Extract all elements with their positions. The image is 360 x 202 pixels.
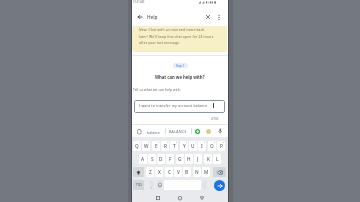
staticText: U: [191, 143, 195, 149]
staticText: Tell us what we can help with:: [133, 88, 181, 92]
button[interactable]: .: [202, 180, 207, 190]
button[interactable]: S: [148, 154, 156, 164]
staticText: W: [144, 143, 149, 149]
staticText: 10:01 AM: [133, 0, 145, 4]
staticText: 2/700: [211, 117, 219, 121]
button[interactable]: L: [213, 154, 221, 164]
button[interactable]: Z: [146, 167, 154, 177]
staticText: P: [220, 143, 223, 149]
staticText: D: [159, 156, 163, 162]
staticText: 3: [158, 141, 160, 144]
button[interactable]: H: [185, 154, 193, 164]
staticText: Help: [147, 14, 158, 20]
staticText: ?123: [136, 183, 142, 187]
button[interactable]: [205, 14, 211, 20]
button[interactable]: [177, 195, 183, 201]
button[interactable]: balance: [144, 127, 163, 136]
staticText: L: [216, 156, 219, 162]
button[interactable]: C: [165, 167, 173, 177]
staticText: 1: [139, 141, 141, 144]
staticText: 2: [148, 141, 150, 144]
staticText: I want to transfer my account balance: [139, 103, 208, 108]
button[interactable]: T: [170, 141, 178, 151]
staticText: Q: [135, 143, 139, 149]
button[interactable]: R: [161, 141, 169, 151]
staticText: What can we help with?: [155, 74, 205, 80]
staticText: R: [164, 143, 167, 149]
button[interactable]: Q: [133, 141, 141, 151]
staticText: H: [187, 156, 191, 162]
staticText: C: [168, 169, 171, 175]
button[interactable]: [206, 129, 211, 134]
staticText: Y: [183, 143, 186, 149]
staticText: ,: [151, 183, 153, 188]
staticText: O: [210, 143, 214, 149]
button[interactable]: U: [189, 141, 197, 151]
button[interactable]: E: [152, 141, 160, 151]
staticText: K: [207, 156, 210, 162]
button[interactable]: O: [208, 141, 216, 151]
staticText: S: [151, 156, 154, 162]
button[interactable]: V: [174, 167, 182, 177]
staticText: 0: [223, 141, 225, 144]
button[interactable]: [134, 100, 225, 113]
staticText: E: [155, 143, 158, 149]
staticText: V: [177, 169, 180, 175]
button[interactable]: Step 1: [173, 63, 188, 68]
button[interactable]: I: [198, 141, 206, 151]
button[interactable]: X: [155, 167, 163, 177]
button[interactable]: [155, 195, 161, 201]
button[interactable]: [213, 167, 226, 177]
button[interactable]: ,: [149, 180, 154, 190]
staticText: 9: [214, 141, 216, 144]
staticText: X: [158, 169, 161, 175]
staticText: .: [204, 183, 206, 188]
staticText: J: [197, 156, 199, 162]
button[interactable]: B: [183, 167, 191, 177]
staticText: A: [141, 156, 145, 162]
staticText: Z: [149, 169, 152, 175]
button[interactable]: P: [217, 141, 225, 151]
staticText: N: [195, 169, 199, 175]
button[interactable]: K: [204, 154, 212, 164]
button[interactable]: Y: [180, 141, 188, 151]
staticText: B: [185, 169, 189, 175]
staticText: 4: [167, 141, 169, 144]
staticText: G: [178, 156, 182, 162]
staticText: BALANCE: [169, 129, 187, 134]
staticText: Step 1: [176, 64, 185, 68]
staticText: T: [173, 143, 176, 149]
button[interactable]: D: [157, 154, 165, 164]
button[interactable]: [217, 14, 221, 21]
staticText: 5: [176, 141, 178, 144]
button[interactable]: [157, 180, 162, 190]
button[interactable]: BALANCE: [166, 127, 189, 136]
button[interactable]: ?123: [133, 180, 144, 190]
staticText: balance: [147, 130, 161, 134]
button[interactable]: A: [139, 154, 147, 164]
button[interactable]: N: [193, 167, 201, 177]
button[interactable]: [199, 195, 205, 201]
button[interactable]: [195, 129, 200, 134]
button[interactable]: [137, 129, 142, 134]
staticText: I: [201, 143, 203, 149]
staticText: 6: [186, 141, 188, 144]
staticText: after your last message.: [139, 40, 181, 45]
button[interactable]: [218, 128, 222, 135]
staticText: later! We'll keep this chat open for 24 …: [139, 34, 214, 39]
button[interactable]: W: [142, 141, 150, 151]
button[interactable]: [135, 12, 145, 22]
button[interactable]: F: [166, 154, 174, 164]
button[interactable]: J: [194, 154, 202, 164]
staticText: F: [169, 156, 172, 162]
staticText: New: Chat with us now and come back: [139, 27, 205, 32]
button[interactable]: M: [202, 167, 210, 177]
staticText: M: [204, 169, 209, 175]
staticText: 8: [204, 141, 206, 144]
button[interactable]: [214, 180, 225, 191]
button[interactable]: [133, 167, 144, 177]
button[interactable]: G: [176, 154, 184, 164]
staticText: 7: [195, 141, 197, 144]
